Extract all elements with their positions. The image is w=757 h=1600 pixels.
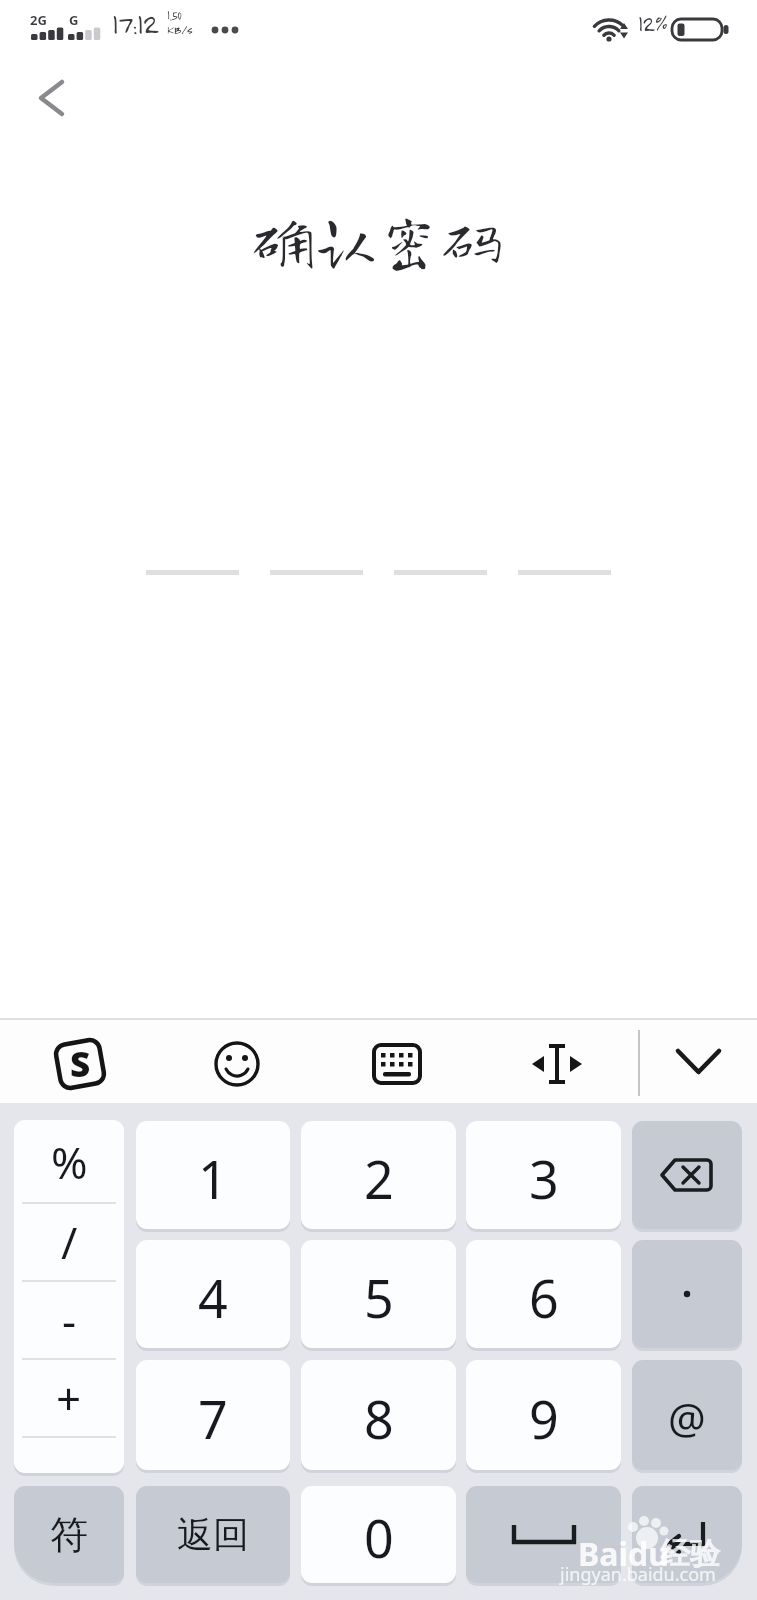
button[interactable] xyxy=(369,1036,425,1092)
staticText: 返回 xyxy=(177,1512,249,1557)
staticText: S xyxy=(70,1040,91,1088)
staticText: - xyxy=(62,1290,77,1350)
staticText: 1 xyxy=(198,1143,228,1214)
staticText: 经验 xyxy=(660,1535,720,1573)
button[interactable]: 8 xyxy=(301,1360,456,1470)
staticText: 12% xyxy=(638,10,667,36)
button[interactable]: 7 xyxy=(136,1360,290,1470)
staticText: 9 xyxy=(529,1383,559,1454)
button[interactable] xyxy=(529,1036,585,1092)
staticText: 2 xyxy=(364,1143,394,1214)
button[interactable]: % xyxy=(14,1120,124,1204)
staticText: 符 xyxy=(50,1511,88,1559)
button[interactable]: 6 xyxy=(466,1240,621,1348)
staticText: 1.50 xyxy=(167,8,182,23)
staticText: 确认密码 xyxy=(252,209,505,270)
button[interactable]: 返回 xyxy=(136,1486,290,1583)
staticText: @ xyxy=(668,1389,706,1446)
button[interactable]: 3 xyxy=(466,1121,621,1229)
staticText: Baidu xyxy=(578,1532,670,1576)
staticText: + xyxy=(56,1368,82,1428)
staticText: % xyxy=(51,1132,88,1192)
staticText: 7 xyxy=(198,1383,228,1454)
button[interactable]: @ xyxy=(632,1360,742,1470)
staticText: jingyan.baidu.com xyxy=(560,1562,716,1587)
staticText: 5 xyxy=(364,1262,394,1333)
staticText: 6 xyxy=(529,1262,559,1333)
button[interactable] xyxy=(632,1121,742,1229)
staticText: 3 xyxy=(529,1143,559,1214)
staticText: 2G xyxy=(30,11,47,29)
button[interactable]: 9 xyxy=(466,1360,621,1470)
button[interactable]: 4 xyxy=(136,1240,290,1348)
button[interactable]: 1 xyxy=(136,1121,290,1229)
button[interactable] xyxy=(209,1036,265,1092)
button[interactable] xyxy=(28,74,76,122)
button[interactable]: S xyxy=(52,1036,108,1092)
button[interactable]: / xyxy=(14,1203,124,1281)
staticText: 4 xyxy=(198,1262,228,1333)
staticText: G xyxy=(69,11,79,29)
button[interactable] xyxy=(672,1036,728,1092)
button[interactable]: 5 xyxy=(301,1240,456,1348)
button[interactable]: 0 xyxy=(301,1486,456,1583)
button[interactable]: 2 xyxy=(301,1121,456,1229)
button[interactable] xyxy=(632,1240,742,1348)
button[interactable] xyxy=(632,1486,742,1583)
button[interactable]: 符 xyxy=(14,1486,124,1583)
staticText: / xyxy=(61,1212,78,1272)
staticText: 0 xyxy=(364,1502,394,1573)
button[interactable]: - xyxy=(14,1281,124,1359)
button[interactable]: + xyxy=(14,1359,124,1437)
staticText: KB/s xyxy=(167,22,193,37)
button[interactable] xyxy=(466,1486,621,1583)
staticText: 8 xyxy=(364,1383,394,1454)
staticText: 17:12 xyxy=(112,7,158,40)
